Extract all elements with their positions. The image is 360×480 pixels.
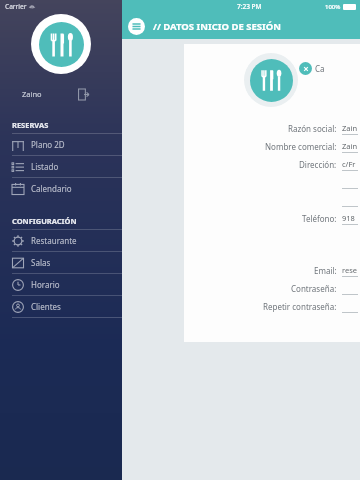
staticText: Razón social: bbox=[288, 123, 337, 134]
staticText: Nombre comercial: bbox=[265, 141, 337, 152]
staticText: Carrier bbox=[5, 2, 27, 11]
button[interactable]: Calendario bbox=[0, 177, 122, 199]
button[interactable]: Ca bbox=[299, 62, 325, 75]
button[interactable]: Salas bbox=[0, 251, 122, 273]
staticText: Clientes bbox=[31, 301, 61, 312]
staticText: Repetir contraseña: bbox=[263, 301, 337, 312]
staticText: Restaurante bbox=[31, 235, 77, 246]
staticText: Zaino bbox=[342, 141, 358, 151]
staticText: c/Franklin 5 bbox=[342, 159, 358, 169]
staticText: // DATOS INICIO DE SESIÓN bbox=[153, 20, 281, 33]
staticText: RESERVAS bbox=[12, 120, 49, 130]
staticText: Horario bbox=[31, 279, 60, 290]
staticText: Contraseña: bbox=[291, 283, 337, 294]
button[interactable]: Plano 2D bbox=[0, 133, 122, 155]
button[interactable]: Restaurante bbox=[0, 229, 122, 251]
staticText: CONFIGURACIÓN bbox=[12, 216, 77, 226]
staticText: 7:23 PM bbox=[237, 2, 262, 11]
staticText: Ca bbox=[315, 63, 325, 74]
staticText: Listado bbox=[31, 161, 59, 172]
staticText: Calendario bbox=[31, 183, 72, 194]
staticText: Zaino bbox=[22, 89, 42, 99]
staticText: 100% bbox=[325, 3, 341, 11]
button[interactable]: Cerrar sesión bbox=[72, 83, 94, 105]
staticText: Email: bbox=[314, 265, 337, 276]
staticText: Dirección: bbox=[299, 159, 337, 170]
staticText: Plano 2D bbox=[31, 139, 65, 150]
staticText: reservas@zainodedaganz bbox=[342, 265, 358, 275]
staticText: Salas bbox=[31, 257, 51, 268]
button[interactable]: Listado bbox=[0, 155, 122, 177]
button[interactable]: Clientes bbox=[0, 295, 122, 317]
staticText: Zaino de Daganzo SL bbox=[342, 123, 358, 133]
staticText: 918848673 bbox=[342, 213, 358, 223]
button[interactable]: Menú bbox=[128, 18, 145, 35]
button[interactable]: Horario bbox=[0, 273, 122, 295]
staticText: Teléfono: bbox=[302, 213, 337, 224]
